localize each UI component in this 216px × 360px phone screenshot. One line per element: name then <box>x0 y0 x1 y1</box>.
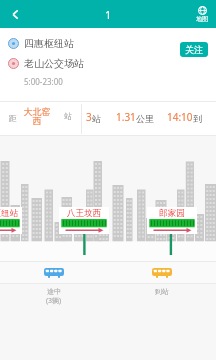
staticText: 老山公交场站 <box>24 57 84 70</box>
staticText: 3 <box>86 110 92 124</box>
button[interactable]: 途中 <box>0 284 108 306</box>
button[interactable]: 关注 <box>180 42 208 57</box>
staticText: 关注 <box>185 44 203 55</box>
staticText: 14:10 <box>167 110 193 124</box>
staticText: 站 <box>92 113 101 124</box>
staticText: 途中 <box>47 287 61 296</box>
staticText: 1 <box>105 7 112 22</box>
staticText: 到 <box>193 113 202 124</box>
button[interactable]: 距 <box>0 102 216 136</box>
staticText: (3辆) <box>46 296 62 306</box>
button[interactable]: 四惠枢纽站 <box>0 207 22 234</box>
staticText: 四惠枢纽站 <box>24 37 74 50</box>
button[interactable]: 到站 <box>108 284 216 296</box>
button[interactable]: 郎家园 <box>147 207 197 234</box>
staticText: 到站 <box>155 287 169 296</box>
staticText: 1.31 <box>116 110 136 124</box>
staticText: 地图 <box>196 15 208 23</box>
staticText: 距 <box>9 113 17 123</box>
staticText: 站 <box>64 111 72 121</box>
button[interactable] <box>108 262 216 283</box>
staticText: 四惠枢纽站 <box>0 208 22 219</box>
button[interactable]: Map <box>188 0 216 28</box>
staticText: 大北窑西 <box>23 106 51 127</box>
staticText: 郎家园 <box>147 208 197 219</box>
button[interactable] <box>0 262 108 283</box>
staticText: 公里 <box>136 113 154 124</box>
button[interactable]: Back <box>0 0 30 28</box>
staticText: 八王坟西 <box>59 208 109 219</box>
staticText: 5:00-23:00 <box>24 76 63 87</box>
button[interactable]: 八王坟西 <box>59 207 109 234</box>
